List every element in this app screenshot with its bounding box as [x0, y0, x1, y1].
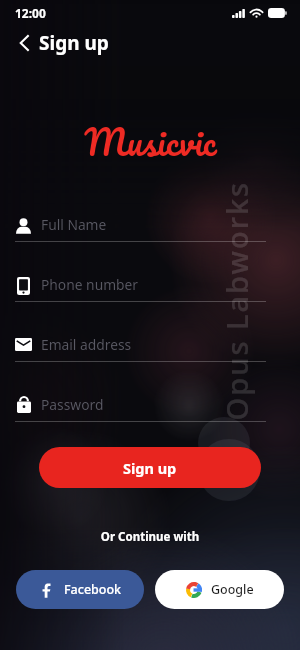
staticText: 12:00 [15, 5, 46, 21]
staticText: Sign up [39, 30, 109, 56]
staticText: Phone number [41, 275, 139, 294]
staticText: Facebook [64, 581, 122, 598]
button[interactable]: Sign up [39, 447, 261, 488]
staticText: Or Continue with [0, 529, 300, 545]
staticText: Musicvic [84, 111, 217, 172]
button[interactable]: Phone number [15, 275, 266, 302]
button[interactable]: Google [155, 570, 284, 609]
staticText: Full Name [41, 215, 107, 234]
button[interactable]: Email address [15, 335, 266, 362]
staticText: Password [41, 395, 104, 414]
staticText: Sign up [123, 458, 177, 478]
staticText: Opus Labworks [216, 180, 255, 420]
button[interactable]: Full Name [15, 215, 266, 242]
button[interactable]: Facebook [16, 570, 144, 609]
button[interactable]: Back [13, 32, 35, 54]
staticText: Google [211, 581, 254, 598]
staticText: Email address [41, 335, 132, 354]
button[interactable]: Password [15, 395, 266, 422]
